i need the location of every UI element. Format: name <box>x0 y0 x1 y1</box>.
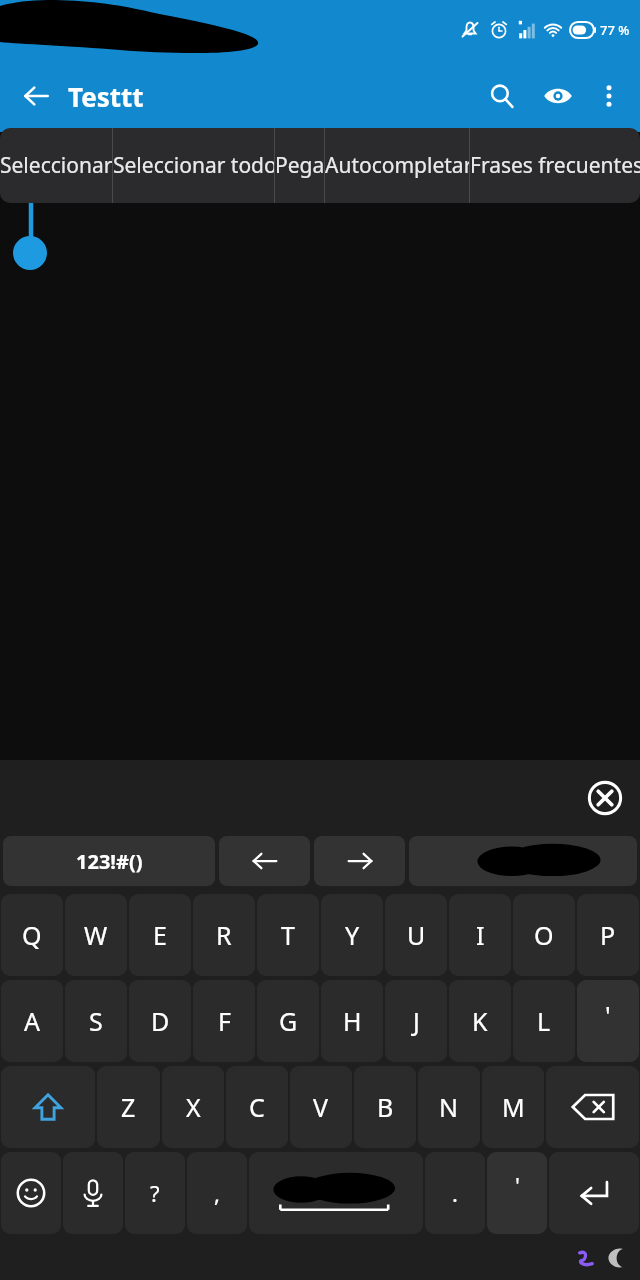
staticText: H <box>343 1004 362 1038</box>
button[interactable]: H <box>321 980 383 1062</box>
button[interactable]: Q <box>1 894 63 976</box>
staticText: V <box>313 1090 329 1124</box>
button[interactable]: T <box>257 894 319 976</box>
staticText: T <box>281 918 295 952</box>
button[interactable]: X <box>162 1066 224 1148</box>
button[interactable]: L <box>513 980 575 1062</box>
staticText: Frases frecuentes <box>470 151 640 180</box>
staticText: F <box>218 1004 231 1038</box>
button[interactable]: P <box>577 894 639 976</box>
button[interactable]: Y <box>321 894 383 976</box>
staticText: 77 % <box>600 21 630 39</box>
button[interactable]: Pegar <box>275 128 324 203</box>
staticText: . <box>452 1178 458 1208</box>
button[interactable]: Move right <box>314 836 405 886</box>
button[interactable]: Frases frecuentes <box>470 128 640 203</box>
button[interactable] <box>409 836 637 886</box>
staticText: Seleccionar todo <box>113 151 274 180</box>
staticText: Q <box>22 918 42 952</box>
staticText: ? <box>150 1178 160 1208</box>
staticText: B <box>377 1090 394 1124</box>
button[interactable]: , <box>187 1152 247 1234</box>
staticText: O <box>534 918 554 952</box>
button[interactable]: A <box>1 980 63 1062</box>
staticText: X <box>186 1090 201 1124</box>
button[interactable]: F <box>193 980 255 1062</box>
staticText: I <box>476 918 485 952</box>
button[interactable]: Backspace <box>546 1066 639 1148</box>
staticText: ' <box>605 998 611 1032</box>
button[interactable]: ' <box>487 1152 547 1234</box>
staticText: N <box>439 1090 459 1124</box>
button[interactable]: S <box>65 980 127 1062</box>
staticText: Testtt <box>68 79 144 114</box>
button[interactable]: ? <box>125 1152 185 1234</box>
button[interactable]: Emoji <box>1 1152 61 1234</box>
button[interactable]: I <box>449 894 511 976</box>
button[interactable]: Voice input <box>63 1152 123 1234</box>
staticText: Autocompletar <box>325 151 469 180</box>
button[interactable]: Close keyboard <box>584 777 626 819</box>
staticText: D <box>151 1004 170 1038</box>
staticText: Pegar <box>275 151 324 180</box>
button[interactable]: Search <box>474 68 530 124</box>
button[interactable]: M <box>482 1066 544 1148</box>
staticText: 123!#() <box>76 848 143 875</box>
button[interactable]: Autocompletar <box>325 128 469 203</box>
staticText: A <box>24 1004 40 1038</box>
button[interactable]: U <box>385 894 447 976</box>
button[interactable]: Space <box>249 1152 423 1234</box>
staticText: L <box>537 1004 551 1038</box>
staticText: E <box>153 918 167 952</box>
button[interactable]: W <box>65 894 127 976</box>
staticText: J <box>413 1004 420 1038</box>
button[interactable]: Back <box>8 68 64 124</box>
staticText: Z <box>121 1090 136 1124</box>
staticText: R <box>216 918 232 952</box>
staticText: Seleccionar <box>0 151 112 180</box>
button[interactable]: Z <box>97 1066 160 1148</box>
button[interactable]: 123!#() <box>3 836 215 886</box>
button[interactable]: O <box>513 894 575 976</box>
button[interactable]: Shift <box>1 1066 95 1148</box>
staticText: P <box>600 918 616 952</box>
button[interactable]: J <box>385 980 447 1062</box>
staticText: C <box>249 1090 265 1124</box>
staticText: Y <box>345 918 360 952</box>
button[interactable]: Seleccionar <box>0 128 112 203</box>
staticText: G <box>279 1004 298 1038</box>
staticText: , <box>214 1178 220 1208</box>
button[interactable]: R <box>193 894 255 976</box>
button[interactable]: Seleccionar todo <box>113 128 274 203</box>
button[interactable]: N <box>418 1066 480 1148</box>
button[interactable]: Enter <box>549 1152 639 1234</box>
staticText: M <box>502 1090 525 1124</box>
staticText: Testtt <box>16 136 79 169</box>
staticText: U <box>407 918 426 952</box>
staticText: ' <box>515 1170 520 1200</box>
button[interactable]: E <box>129 894 191 976</box>
button[interactable]: G <box>257 980 319 1062</box>
button[interactable]: D <box>129 980 191 1062</box>
button[interactable]: V <box>290 1066 352 1148</box>
staticText: K <box>472 1004 488 1038</box>
button[interactable]: B <box>354 1066 416 1148</box>
button[interactable]: K <box>449 980 511 1062</box>
button[interactable]: More options <box>586 73 632 119</box>
button[interactable]: C <box>226 1066 288 1148</box>
button[interactable]: Move left <box>219 836 310 886</box>
button[interactable]: . <box>425 1152 485 1234</box>
button[interactable]: ' <box>577 980 639 1062</box>
staticText: W <box>84 918 108 952</box>
staticText: S <box>89 1004 103 1038</box>
button[interactable]: Preview <box>530 68 586 124</box>
